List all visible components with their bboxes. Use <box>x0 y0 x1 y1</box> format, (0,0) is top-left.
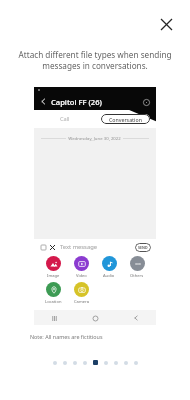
staticText: Attach different file types when sending… <box>16 49 174 71</box>
button[interactable]: Page 9 <box>134 361 138 365</box>
button[interactable]: Page 2 <box>63 361 67 365</box>
button[interactable]: Back <box>131 313 141 323</box>
staticText: Camera <box>74 299 89 305</box>
button[interactable]: Page 5 <box>93 360 98 365</box>
staticText: Others <box>130 273 144 279</box>
staticText: Conversation <box>109 116 142 123</box>
button[interactable]: Page 4 <box>83 361 87 365</box>
staticText: SEND <box>138 245 148 250</box>
button[interactable]: Page 7 <box>114 361 118 365</box>
button[interactable]: Page 8 <box>124 361 128 365</box>
button[interactable]: Image <box>39 256 67 279</box>
button[interactable]: Stickers <box>39 243 47 251</box>
button[interactable]: Others <box>123 256 151 279</box>
staticText: Capitol FF (26) <box>51 97 102 107</box>
staticText: Video <box>76 273 87 279</box>
button[interactable]: Page 3 <box>73 361 77 365</box>
staticText: Image <box>47 273 60 279</box>
button[interactable]: Home <box>90 313 100 323</box>
button[interactable]: Details <box>141 97 151 107</box>
button[interactable]: Camera <box>67 282 95 305</box>
button[interactable]: Conversation <box>101 114 150 124</box>
button[interactable]: SEND <box>135 243 151 252</box>
button[interactable]: Page 1 <box>53 361 57 365</box>
staticText: Call <box>60 115 70 123</box>
button[interactable]: Audio <box>95 256 123 279</box>
staticText: Note: All names are fictitious <box>30 333 103 340</box>
staticText: Location <box>45 299 62 305</box>
button[interactable]: Call <box>34 110 95 128</box>
button[interactable]: Hide attachments <box>48 243 56 251</box>
button[interactable]: Page 6 <box>104 361 108 365</box>
button[interactable]: Recent apps <box>49 313 59 323</box>
staticText: Text message <box>60 243 97 251</box>
button[interactable]: Close <box>155 13 177 35</box>
button[interactable]: Video <box>67 256 95 279</box>
staticText: Wednesday, June 30, 2022 <box>66 135 123 141</box>
staticText: Audio <box>103 273 115 279</box>
button[interactable]: Back <box>39 97 48 106</box>
button[interactable]: Location <box>39 282 67 305</box>
